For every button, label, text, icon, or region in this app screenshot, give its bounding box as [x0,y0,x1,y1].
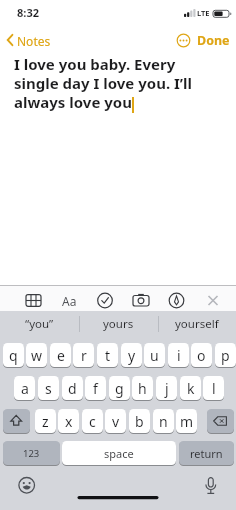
button[interactable]: c [82,409,103,433]
staticText: yourself [175,316,219,332]
button[interactable]: j [156,376,177,400]
button[interactable]: w [26,343,47,367]
button[interactable]: m [176,409,197,433]
button[interactable]: x [58,409,79,433]
button[interactable] [92,285,118,311]
button[interactable] [164,285,190,311]
staticText: l [212,379,216,398]
staticText: 123 [23,447,40,460]
button[interactable]: 123 [3,441,60,465]
staticText: s [45,379,52,398]
staticText: e [57,346,65,365]
staticText: return [190,446,223,461]
staticText: d [68,379,77,398]
staticText: Notes [17,33,51,49]
button[interactable]: k [180,376,201,400]
staticText: yours [103,316,134,332]
button[interactable]: Notes [4,30,54,50]
button[interactable]: h [132,376,153,400]
button[interactable]: s [38,376,59,400]
button[interactable] [198,473,224,499]
staticText: u [150,346,159,365]
button[interactable]: “you” [0,311,78,337]
button[interactable]: r [73,343,94,367]
staticText: “you” [25,316,54,332]
button[interactable]: yours [79,311,157,337]
button[interactable]: a [14,376,35,400]
button[interactable]: o [191,343,212,367]
button[interactable] [14,473,40,499]
button[interactable] [200,285,226,311]
staticText: p [221,346,230,365]
button[interactable]: space [62,441,176,465]
button[interactable]: i [168,343,189,367]
button[interactable]: Done [197,32,230,49]
button[interactable] [176,33,191,48]
staticText: g [115,379,124,398]
staticText: z [42,412,49,431]
button[interactable]: b [129,409,150,433]
button[interactable]: z [35,409,56,433]
button[interactable]: g [109,376,130,400]
staticText: space [104,446,134,461]
button[interactable]: e [50,343,71,367]
button[interactable] [57,285,83,311]
staticText: j [165,379,169,398]
staticText: Done [197,32,230,49]
button[interactable]: return [179,441,234,465]
button[interactable]: t [97,343,118,367]
staticText: LTE [197,8,210,18]
staticText: y [128,346,136,365]
button[interactable]: f [85,376,106,400]
staticText: b [135,412,144,431]
button[interactable]: y [121,343,142,367]
staticText: w [31,346,43,365]
staticText: f [93,379,98,398]
button[interactable]: n [153,409,174,433]
staticText: o [197,346,206,365]
button[interactable]: l [203,376,224,400]
button[interactable]: u [144,343,165,367]
staticText: I love you baby. Every single day I love… [14,54,193,113]
button[interactable] [128,285,154,311]
staticText: x [65,412,73,431]
staticText: q [9,346,18,365]
button[interactable] [207,409,234,433]
button[interactable] [21,285,47,311]
staticText: h [138,379,147,398]
staticText: 8:32 [17,5,39,20]
button[interactable]: yourself [158,311,236,337]
staticText: k [187,379,195,398]
staticText: Aa [62,293,77,309]
staticText: m [180,412,194,431]
staticText: a [21,379,29,398]
staticText: i [177,346,181,365]
button[interactable]: v [105,409,126,433]
staticText: c [89,412,96,431]
staticText: t [105,346,111,365]
button[interactable]: d [62,376,83,400]
staticText: v [112,412,120,431]
button[interactable]: q [3,343,24,367]
staticText: n [159,412,168,431]
staticText: r [81,346,87,365]
button[interactable] [3,409,30,433]
button[interactable]: p [215,343,236,367]
